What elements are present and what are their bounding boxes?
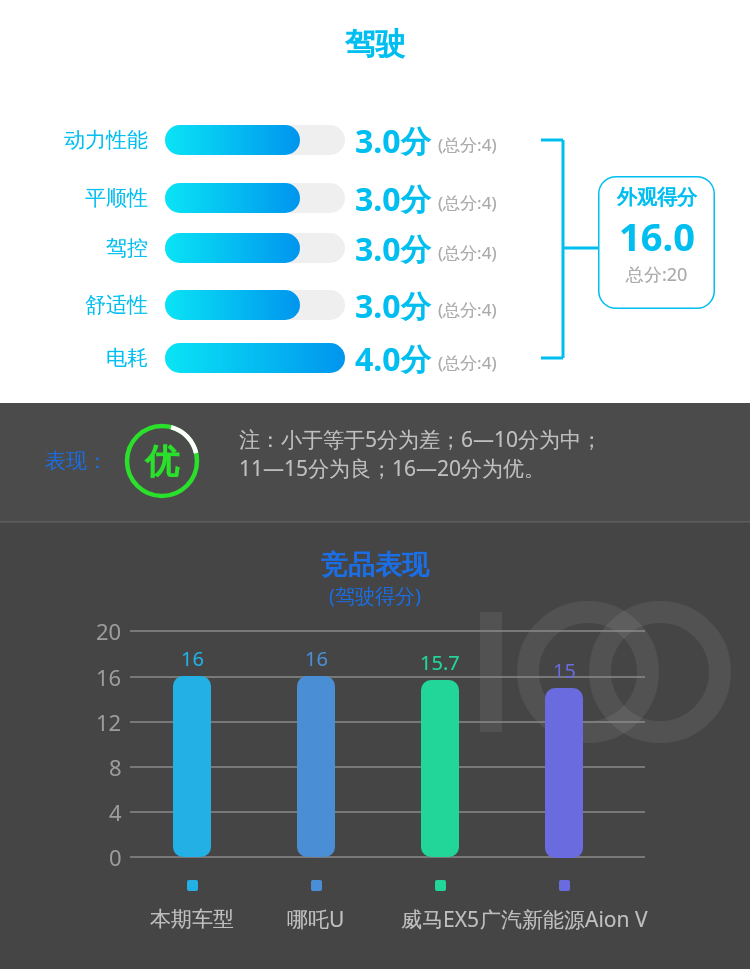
staticText: 威马EX5 xyxy=(401,905,479,934)
staticText: 分 xyxy=(401,123,431,161)
staticText: (总分:4) xyxy=(438,191,497,214)
staticText: 外观得分 xyxy=(617,185,697,210)
button[interactable]: 驾驶 xyxy=(325,22,425,66)
staticText: 16 xyxy=(96,662,122,692)
staticText: 优 xyxy=(145,440,179,483)
other: 优 rating xyxy=(124,423,200,499)
staticText: 3.0 xyxy=(355,119,401,161)
staticText: 16 xyxy=(181,645,204,672)
staticText: 总分:20 xyxy=(626,262,688,287)
staticText: (总分:4) xyxy=(438,133,497,156)
staticText: 本期车型 xyxy=(150,906,234,932)
button[interactable] xyxy=(545,688,583,858)
staticText: 哪吒U xyxy=(287,905,345,934)
staticText: 15 xyxy=(553,657,576,684)
staticText: 20 xyxy=(96,616,122,646)
staticText: 分 xyxy=(401,341,431,379)
staticText: 分 xyxy=(401,231,431,269)
button[interactable] xyxy=(173,676,211,857)
staticText: 动力性能 xyxy=(64,127,148,153)
staticText: (总分:4) xyxy=(438,241,497,264)
staticText: 11—15分为良；16—20分为优。 xyxy=(239,454,546,483)
staticText: 驾控 xyxy=(106,235,148,261)
staticText: 8 xyxy=(109,752,122,782)
button[interactable]: 竞品表现 xyxy=(275,548,475,610)
button[interactable]: 外观得分 xyxy=(598,176,715,309)
staticText: (驾驶得分) xyxy=(329,582,421,609)
staticText: 表现： xyxy=(45,448,108,474)
staticText: 4.0 xyxy=(355,337,401,379)
staticText: (总分:4) xyxy=(438,298,497,321)
staticText: 驾驶 xyxy=(345,25,405,63)
staticText: 3.0 xyxy=(355,284,401,326)
staticText: 12 xyxy=(96,707,122,737)
staticText: 分 xyxy=(401,181,431,219)
staticText: 广汽新能源Aion V xyxy=(480,905,648,934)
staticText: 竞品表现 xyxy=(321,548,429,582)
button[interactable] xyxy=(297,676,335,857)
staticText: 15.7 xyxy=(420,649,460,676)
staticText: 注：小于等于5分为差；6—10分为中； xyxy=(239,425,603,454)
staticText: 电耗 xyxy=(106,345,148,371)
staticText: 4 xyxy=(109,797,122,827)
staticText: (总分:4) xyxy=(438,351,497,374)
staticText: 3.0 xyxy=(355,177,401,219)
staticText: 平顺性 xyxy=(85,185,148,211)
staticText: 16 xyxy=(305,645,328,672)
staticText: 舒适性 xyxy=(85,292,148,318)
staticText: 3.0 xyxy=(355,227,401,269)
staticText: 分 xyxy=(401,288,431,326)
staticText: 0 xyxy=(109,842,122,872)
button[interactable] xyxy=(421,680,459,857)
staticText: 16.0 xyxy=(619,210,695,262)
button[interactable]: 表现： xyxy=(45,445,117,477)
